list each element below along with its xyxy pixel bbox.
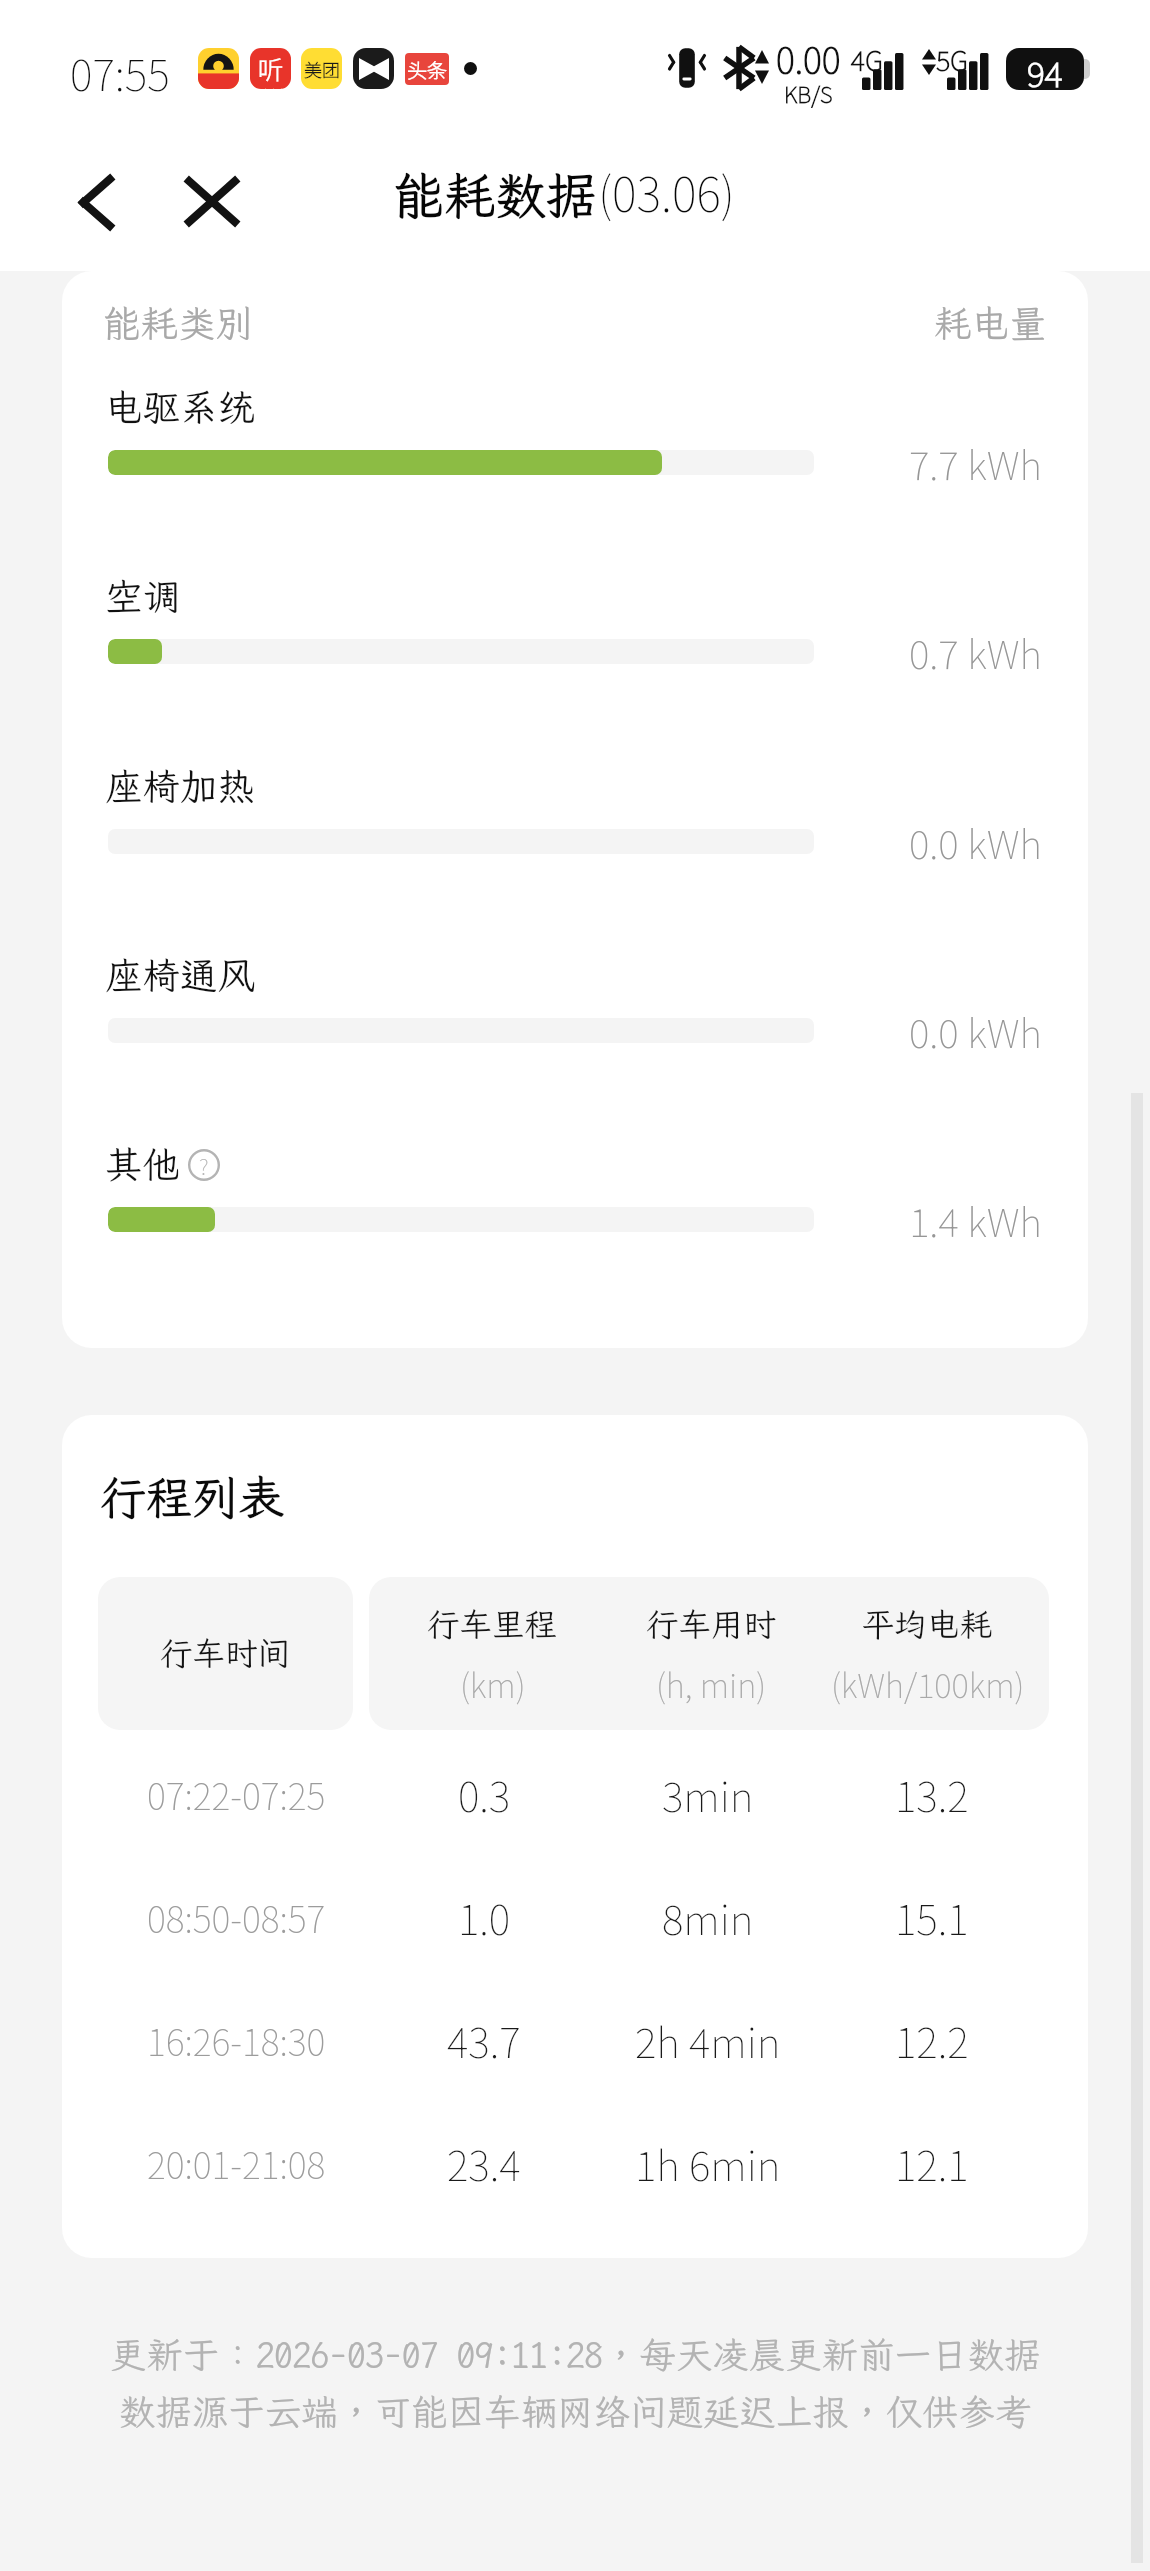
staticText: 23.4 <box>447 2133 521 2192</box>
staticText: 听 <box>258 50 284 86</box>
staticText: (03.06) <box>598 157 735 225</box>
button[interactable]: Back <box>14 142 144 263</box>
staticText: 更新于：2026-03-07 09:11:28，每天凌晨更新前一日数据 <box>110 2334 1041 2377</box>
staticText: 13.2 <box>895 1764 969 1823</box>
staticText: 7.7 kWh <box>909 435 1042 491</box>
staticText: 0.00 <box>776 32 841 84</box>
staticText: 电驱系统 <box>105 386 255 430</box>
staticText: 能耗数据 <box>393 167 598 227</box>
staticText: 1.4 kWh <box>909 1192 1042 1248</box>
button[interactable]: More info <box>188 1149 220 1181</box>
staticText: 08:50-08:57 <box>147 1891 326 1943</box>
button[interactable]: 16:26-18:30 <box>62 1978 1088 2101</box>
staticText: 行车时间 <box>160 1635 291 1673</box>
staticText: 5G <box>936 40 968 79</box>
staticText: 行车里程 <box>427 1606 558 1644</box>
staticText: 15.1 <box>895 1887 969 1946</box>
staticText: 马年红包 <box>255 86 287 89</box>
staticText: 43.7 <box>447 2010 521 2069</box>
staticText: 座椅加热 <box>105 765 255 809</box>
staticText: 07:55 <box>70 41 170 103</box>
staticText: 1h 6min <box>635 2133 781 2192</box>
button[interactable]: Close <box>156 141 266 262</box>
staticText: 20:01-21:08 <box>147 2137 326 2189</box>
staticText: (h, min) <box>656 1660 767 1708</box>
staticText: 12.1 <box>895 2133 969 2192</box>
staticText: KB/S <box>784 77 833 109</box>
staticText: (kWh/100km) <box>831 1660 1025 1708</box>
staticText: 07:22-07:25 <box>147 1768 326 1820</box>
button[interactable]: 08:50-08:57 <box>62 1855 1088 1978</box>
staticText: 耗电量 <box>934 302 1047 346</box>
staticText: 空调 <box>105 575 180 619</box>
button[interactable]: 07:22-07:25 <box>62 1732 1088 1855</box>
staticText: 数据源于云端，可能因车辆网络问题延迟上报，仅供参考 <box>119 2391 1032 2434</box>
staticText: 行车用时 <box>646 1606 777 1644</box>
staticText: ? <box>199 1149 209 1181</box>
staticText: 0.3 <box>458 1764 511 1823</box>
staticText: 12.2 <box>895 2010 969 2069</box>
staticText: 美团 <box>304 56 340 82</box>
staticText: 座椅通风 <box>105 954 255 998</box>
staticText: 1.0 <box>458 1887 511 1946</box>
staticText: 8min <box>662 1887 754 1946</box>
staticText: 16:26-18:30 <box>147 2014 326 2066</box>
staticText: 能耗类别 <box>103 302 253 346</box>
staticText: 0.0 kWh <box>909 814 1042 870</box>
staticText: 头条 <box>407 55 447 84</box>
staticText: 行程列表 <box>100 1471 284 1525</box>
staticText: 4G <box>851 40 883 79</box>
staticText: 0.7 kWh <box>909 624 1042 680</box>
staticText: (km) <box>460 1660 526 1708</box>
staticText: 0.0 kWh <box>909 1003 1042 1059</box>
button[interactable]: 20:01-21:08 <box>62 2101 1088 2224</box>
staticText: 其他 <box>105 1143 180 1187</box>
staticText: 94 <box>1027 48 1063 90</box>
staticText: 平均电耗 <box>862 1606 993 1644</box>
staticText: 3min <box>662 1764 754 1823</box>
staticText: 2h 4min <box>635 2010 781 2069</box>
